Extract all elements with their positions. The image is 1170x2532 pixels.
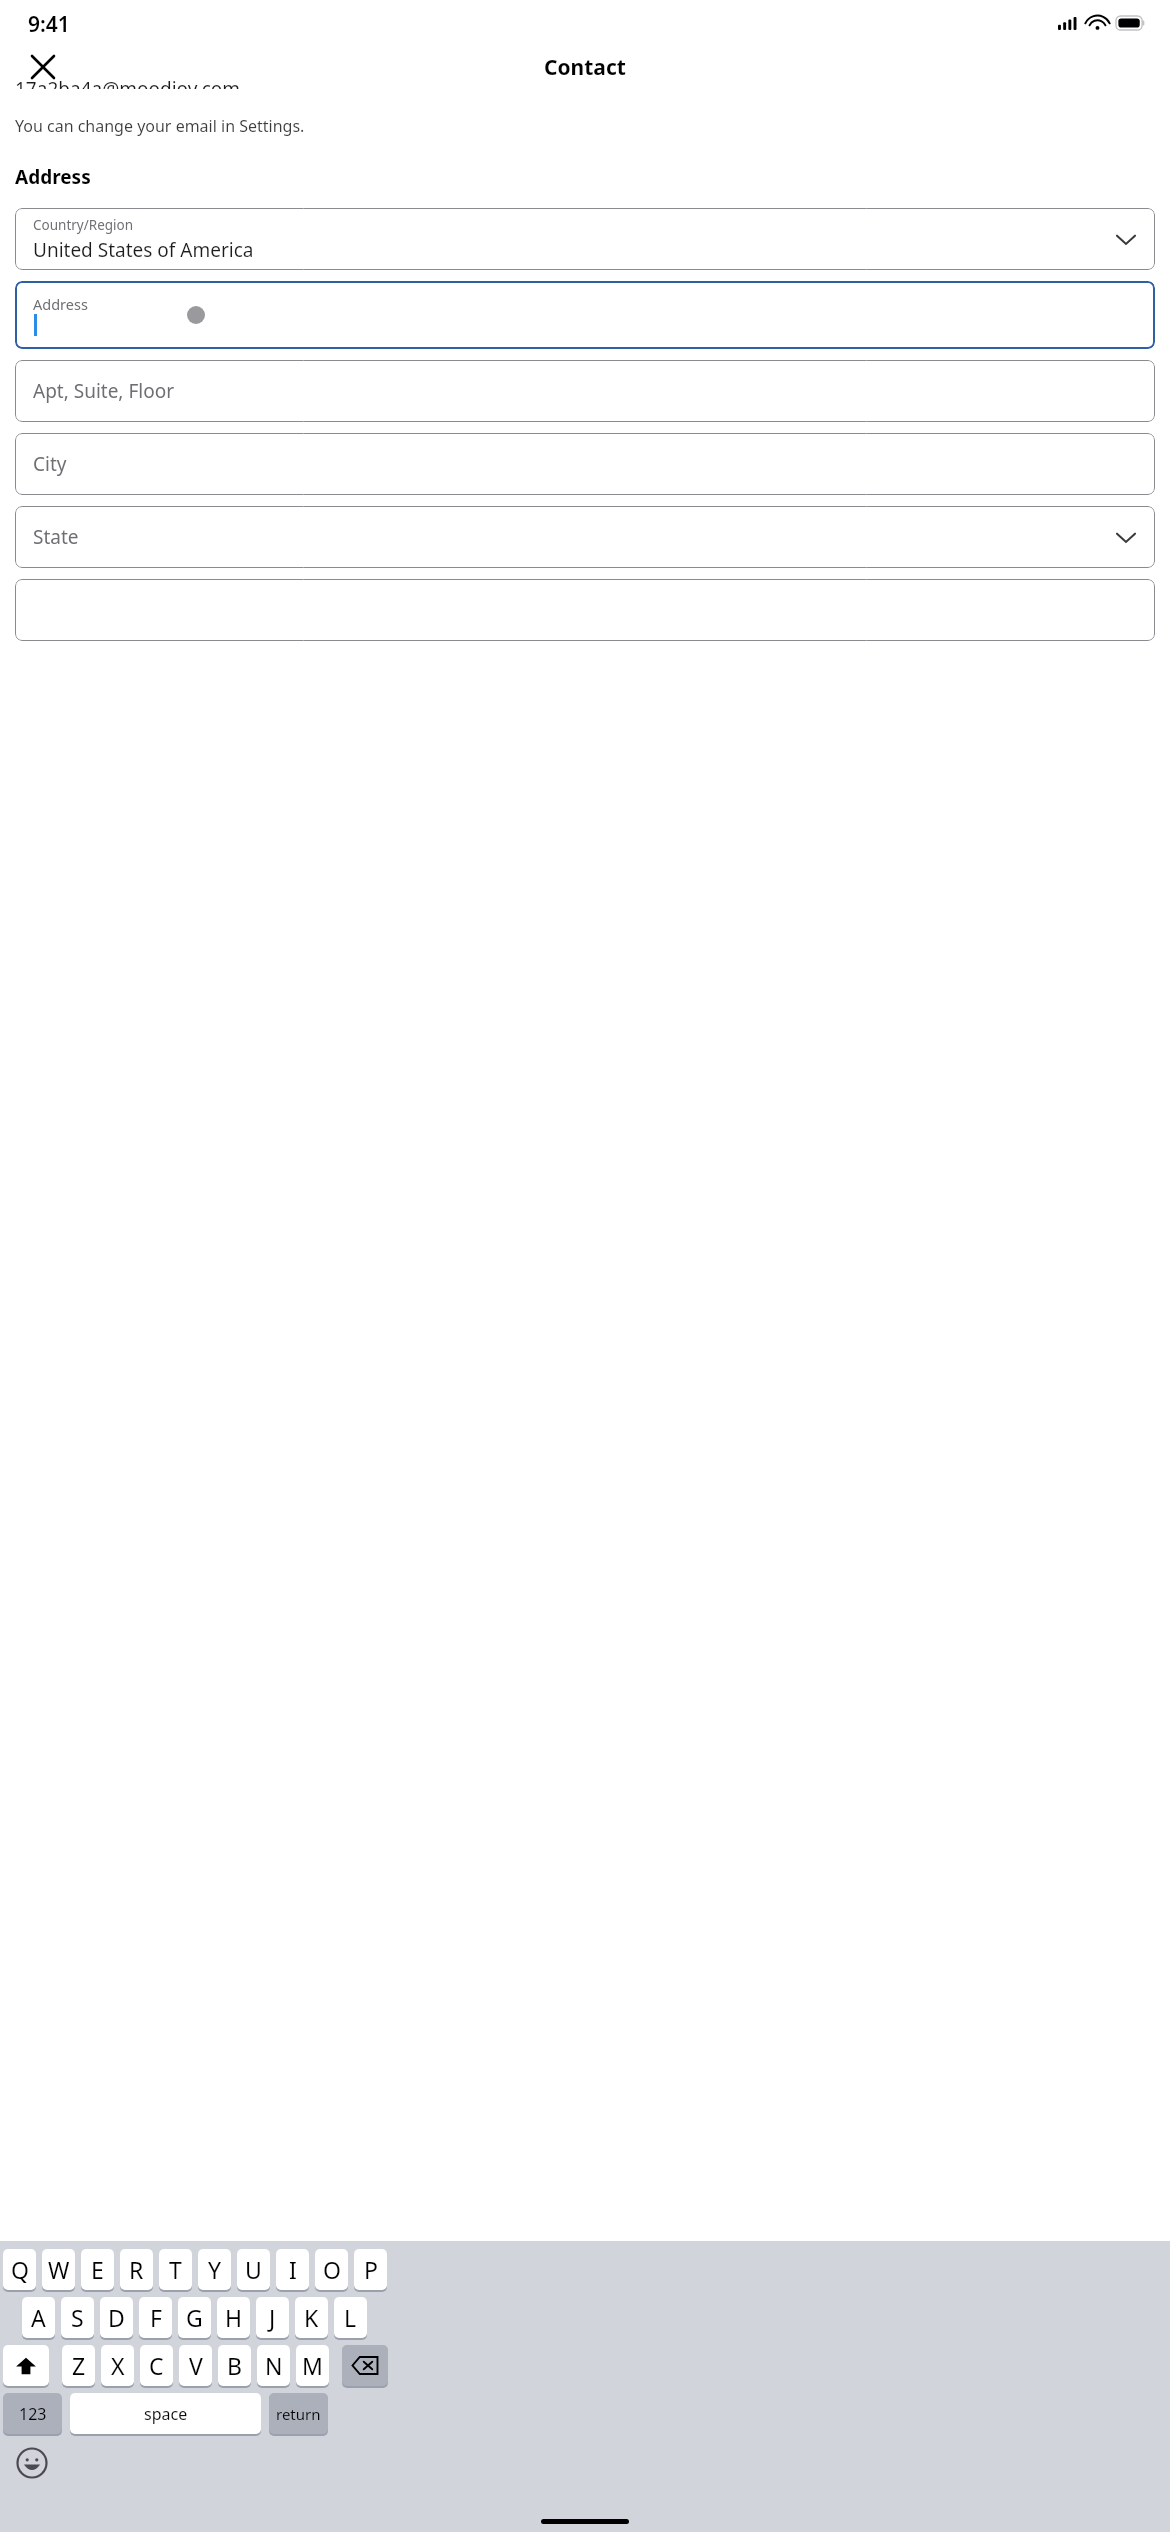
staticText: 9:41 — [28, 10, 70, 39]
staticText: United States of America — [33, 237, 254, 263]
button[interactable]: N — [257, 2345, 290, 2386]
button[interactable]: S — [61, 2297, 94, 2338]
button[interactable]: M — [296, 2345, 329, 2386]
staticText: K — [304, 2302, 319, 2333]
button[interactable]: Y — [198, 2249, 231, 2290]
button[interactable]: P — [354, 2249, 387, 2290]
button[interactable] — [15, 579, 1155, 641]
button[interactable]: U — [237, 2249, 270, 2290]
staticText: J — [269, 2302, 276, 2333]
staticText: P — [364, 2254, 378, 2285]
button[interactable]: B — [218, 2345, 251, 2386]
staticText: B — [227, 2350, 242, 2381]
button[interactable]: Q — [3, 2249, 36, 2290]
button[interactable]: Close — [26, 50, 60, 84]
staticText: M — [302, 2350, 323, 2381]
staticText: Q — [11, 2254, 29, 2285]
staticText: X — [111, 2350, 125, 2381]
button[interactable]: Emoji — [16, 2447, 48, 2479]
staticText: Address — [33, 294, 88, 314]
button[interactable]: O — [315, 2249, 348, 2290]
button[interactable]: Country/Region — [15, 208, 1155, 270]
button[interactable]: Address — [15, 281, 1155, 349]
staticText: H — [225, 2302, 243, 2333]
button[interactable]: A — [22, 2297, 55, 2338]
staticText: Y — [208, 2254, 222, 2285]
staticText: You can change your email in Settings. — [15, 115, 305, 137]
staticText: A — [31, 2302, 46, 2333]
button[interactable]: G — [178, 2297, 211, 2338]
button[interactable]: City — [15, 433, 1155, 495]
staticText: R — [129, 2254, 144, 2285]
button[interactable]: L — [334, 2297, 367, 2338]
button[interactable]: J — [256, 2297, 289, 2338]
staticText: G — [186, 2302, 203, 2333]
button[interactable]: space — [70, 2393, 261, 2434]
staticText: Apt, Suite, Floor — [33, 378, 174, 404]
staticText: D — [108, 2302, 125, 2333]
button[interactable]: Shift — [3, 2345, 49, 2386]
staticText: 17a2ba4a@moodjoy.com — [15, 76, 241, 89]
button[interactable]: 123 — [3, 2393, 62, 2434]
staticText: L — [344, 2302, 357, 2333]
staticText: 123 — [19, 2403, 47, 2425]
button[interactable]: D — [100, 2297, 133, 2338]
button[interactable]: Backspace — [342, 2345, 388, 2386]
staticText: C — [149, 2350, 164, 2381]
staticText: T — [169, 2254, 182, 2285]
staticText: State — [33, 524, 79, 550]
staticText: Address — [15, 164, 91, 190]
button[interactable]: T — [159, 2249, 192, 2290]
staticText: N — [265, 2350, 283, 2381]
button[interactable]: W — [42, 2249, 75, 2290]
staticText: F — [150, 2302, 162, 2333]
button[interactable]: State — [15, 506, 1155, 568]
button[interactable]: R — [120, 2249, 153, 2290]
staticText: W — [48, 2254, 70, 2285]
staticText: return — [276, 2404, 321, 2424]
staticText: Country/Region — [33, 216, 134, 234]
staticText: space — [144, 2403, 188, 2425]
button[interactable]: Z — [62, 2345, 95, 2386]
button[interactable]: H — [217, 2297, 250, 2338]
button[interactable]: X — [101, 2345, 134, 2386]
staticText: Contact — [544, 53, 626, 82]
button[interactable]: F — [139, 2297, 172, 2338]
staticText: S — [71, 2302, 84, 2333]
staticText: City — [33, 451, 67, 477]
staticText: V — [189, 2350, 203, 2381]
button[interactable]: Apt, Suite, Floor — [15, 360, 1155, 422]
staticText: Z — [72, 2350, 86, 2381]
button[interactable]: K — [295, 2297, 328, 2338]
button[interactable]: I — [276, 2249, 309, 2290]
button[interactable]: E — [81, 2249, 114, 2290]
staticText: O — [323, 2254, 341, 2285]
staticText: I — [289, 2254, 297, 2285]
staticText: E — [91, 2254, 104, 2285]
button[interactable]: V — [179, 2345, 212, 2386]
button[interactable]: C — [140, 2345, 173, 2386]
staticText: U — [245, 2254, 262, 2285]
button[interactable]: return — [269, 2393, 328, 2434]
